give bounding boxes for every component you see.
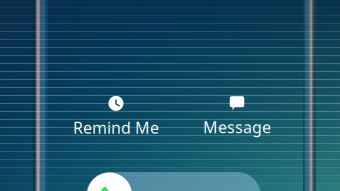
button[interactable]: Message (182, 97, 292, 137)
staticText: Remind Me (73, 117, 159, 138)
button[interactable]: Answer (87, 172, 132, 191)
staticText: Message (203, 116, 271, 138)
button[interactable]: Remind Me (61, 97, 171, 137)
